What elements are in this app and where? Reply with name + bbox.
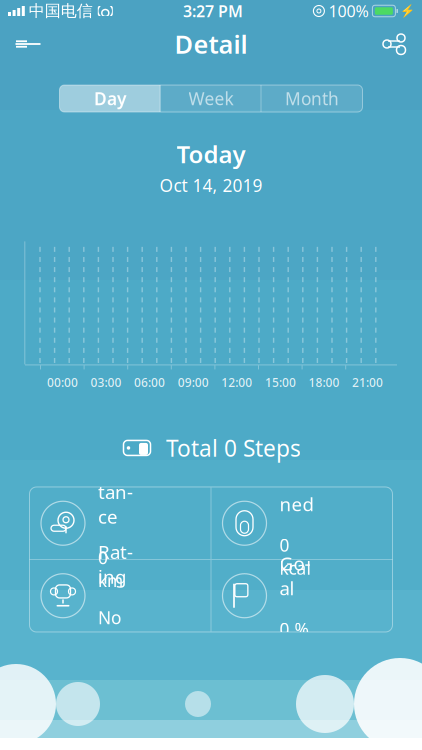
- button[interactable]: Back: [0, 22, 56, 66]
- staticText: 中国电信: [29, 1, 93, 21]
- staticText: ⚡: [400, 4, 415, 18]
- staticText: Month: [285, 87, 339, 110]
- staticText: 12:00: [221, 374, 252, 390]
- staticText: 03:00: [90, 374, 121, 390]
- staticText: Distance: [98, 454, 133, 529]
- button[interactable]: Share: [366, 22, 422, 66]
- button[interactable]: Month: [261, 85, 362, 112]
- staticText: Today: [176, 138, 245, 170]
- staticText: 0 km: [98, 546, 123, 592]
- staticText: Week: [188, 87, 233, 110]
- staticText: 21:00: [352, 374, 383, 390]
- staticText: Rating: [98, 539, 133, 589]
- staticText: 3:27 PM: [183, 0, 243, 22]
- staticText: 0 %: [279, 617, 308, 640]
- button[interactable]: Goal: [211, 560, 392, 631]
- staticText: 06:00: [134, 374, 165, 390]
- staticText: 00:00: [47, 374, 78, 390]
- button[interactable]: Rating: [30, 560, 210, 631]
- button[interactable]: Week: [160, 85, 261, 112]
- staticText: Oct 14, 2019: [159, 174, 262, 197]
- staticText: 09:00: [178, 374, 209, 390]
- staticText: Goal: [279, 551, 310, 600]
- staticText: 0 kcal: [279, 533, 310, 579]
- staticText: Total 0 Steps: [166, 433, 301, 463]
- staticText: No data: [98, 606, 135, 652]
- staticText: 15:00: [265, 374, 296, 390]
- staticText: Day: [94, 87, 126, 110]
- staticText: Detail: [174, 27, 247, 61]
- button[interactable]: Day: [59, 85, 160, 112]
- staticText: 100%: [328, 0, 368, 22]
- staticText: Burned: [279, 467, 317, 516]
- button[interactable]: Burned: [211, 487, 392, 559]
- button[interactable]: Distance: [30, 487, 210, 559]
- staticText: 18:00: [308, 374, 339, 390]
